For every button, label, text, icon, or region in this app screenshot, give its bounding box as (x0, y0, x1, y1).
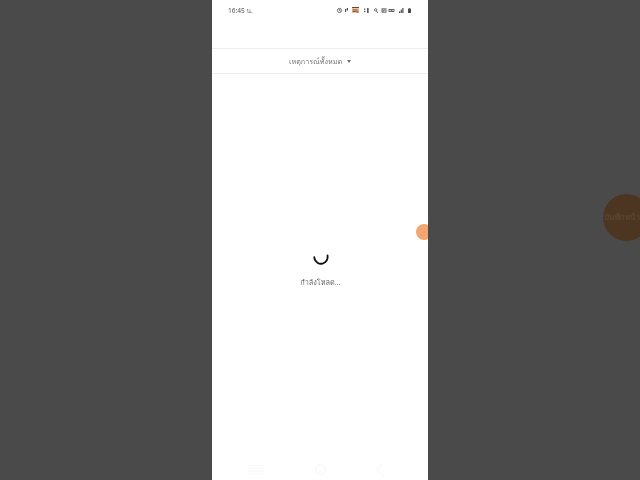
button[interactable]: Floating assistant (603, 194, 640, 241)
staticText: กำลังโหลด... (300, 277, 341, 289)
button[interactable]: เหตุการณ์ทั้งหมด (212, 49, 428, 73)
staticText: บันทึกหน้าจอ (604, 211, 640, 224)
staticText: 16:45 น. (228, 5, 253, 15)
button[interactable]: Quick action (416, 224, 428, 240)
staticText: เหตุการณ์ทั้งหมด (289, 56, 343, 67)
